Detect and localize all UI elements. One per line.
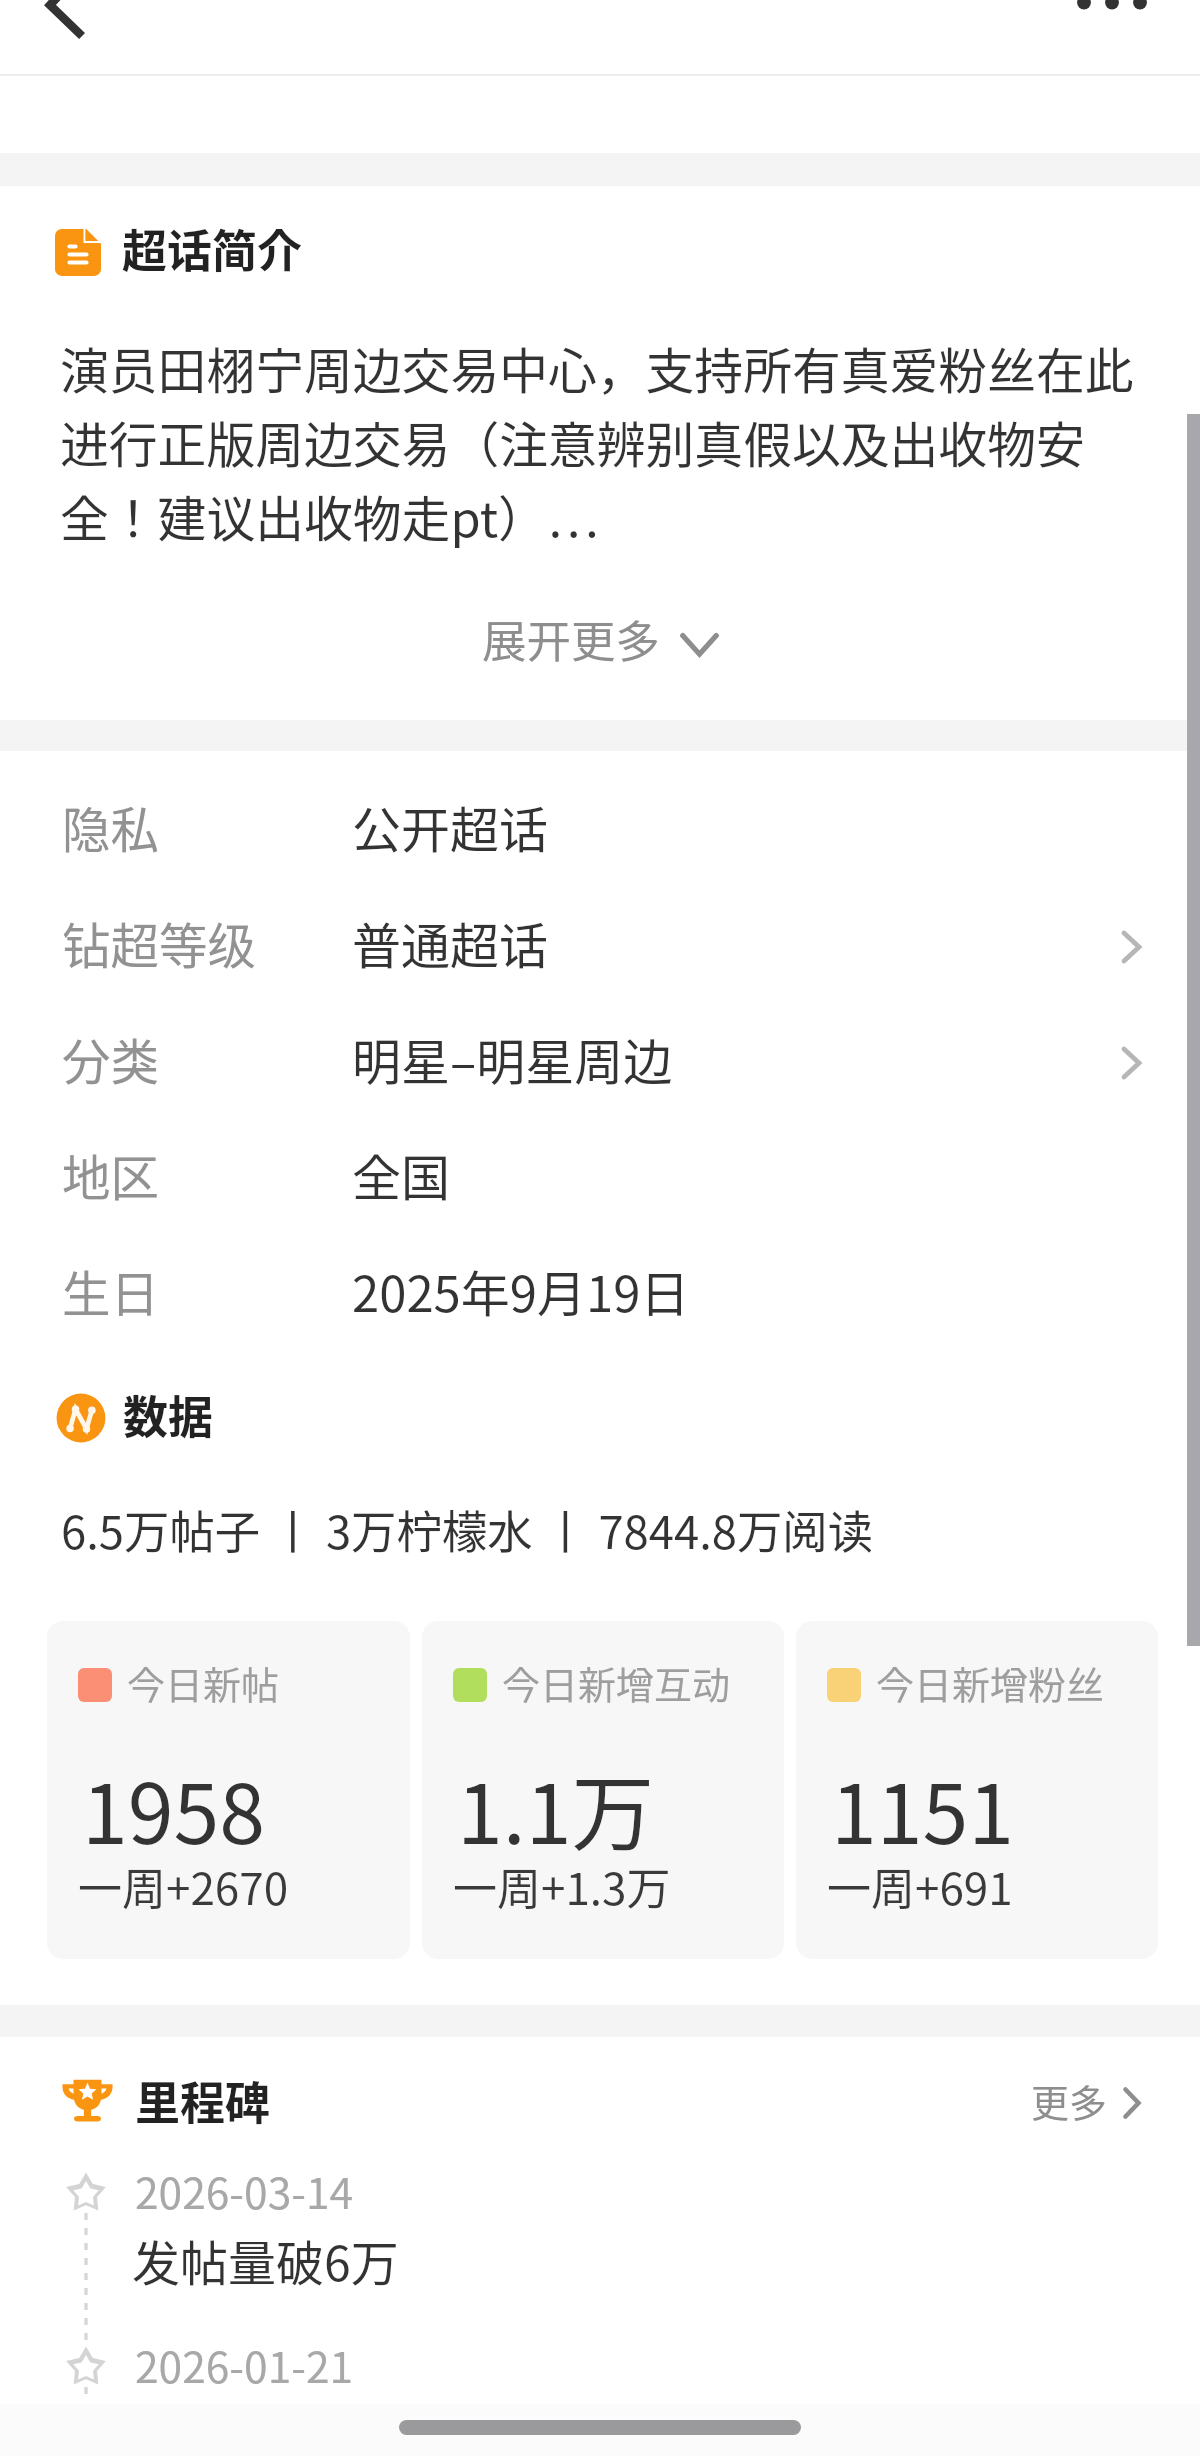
button[interactable]: 隐私	[0, 775, 1200, 887]
button[interactable]: 生日	[0, 1239, 1200, 1351]
staticText: 明星–明星周边	[352, 1034, 673, 1092]
staticText: 隐私	[62, 802, 352, 860]
staticText: 数据	[123, 1388, 214, 1446]
staticText: 发帖量破6万	[132, 2236, 399, 2292]
staticText: 2026-03-14	[135, 2171, 354, 2219]
staticText: 今日新帖	[127, 1664, 280, 1708]
staticText: 今日新增互动	[502, 1664, 731, 1708]
staticText: 公开超话	[352, 802, 549, 860]
staticText: 全国	[352, 1150, 451, 1208]
staticText: 1.1万	[457, 1770, 655, 1862]
staticText: 一周+691	[827, 1867, 1013, 1915]
button[interactable]: More options	[1063, 0, 1193, 46]
button[interactable]: 更多	[1023, 2060, 1150, 2146]
button[interactable]: 今日新增粉丝	[796, 1621, 1158, 1959]
button[interactable]: 2026-01-21	[120, 2337, 1140, 2456]
staticText: 1958	[82, 1770, 266, 1862]
staticText: 更多	[1031, 2085, 1108, 2125]
button[interactable]: 展开更多	[0, 598, 1200, 690]
button[interactable]: 数据	[34, 1375, 264, 1463]
button[interactable]: 2026-03-14	[120, 2163, 1140, 2335]
staticText: 1151	[831, 1770, 1015, 1862]
staticText: 里程碑	[135, 2074, 271, 2132]
staticText: 展开更多	[482, 621, 661, 668]
staticText: 钻超等级	[62, 918, 352, 976]
staticText: 一周+2670	[78, 1867, 289, 1915]
button[interactable]: 分类	[0, 1007, 1200, 1119]
button[interactable]: 地区	[0, 1123, 1200, 1235]
staticText: 演员田栩宁周边交易中心，支持所有真爱粉丝在此进行正版周边交易（注意辨别真假以及出…	[60, 330, 1146, 552]
staticText: 2026-01-21	[135, 2345, 354, 2393]
button[interactable]: 里程碑	[34, 2060, 304, 2146]
staticText: 6.5万帖子 丨 3万柠檬水 丨 7844.8万阅读	[61, 1504, 874, 1560]
staticText: 超话简介	[122, 222, 303, 280]
staticText: 普通超话	[352, 918, 549, 976]
staticText: 分类	[62, 1034, 352, 1092]
staticText: 2025年9月19日	[352, 1266, 690, 1324]
button[interactable]: 今日新增互动	[422, 1621, 784, 1959]
staticText: 地区	[62, 1150, 352, 1208]
button[interactable]: Back	[25, 0, 137, 45]
staticText: 一周+1.3万	[453, 1867, 671, 1915]
button[interactable]: 超话简介	[34, 208, 344, 296]
button[interactable]: 今日新帖	[47, 1621, 410, 1959]
staticText: 生日	[62, 1266, 352, 1324]
button[interactable]: 钻超等级	[0, 891, 1200, 1003]
staticText: 今日新增粉丝	[876, 1664, 1105, 1708]
